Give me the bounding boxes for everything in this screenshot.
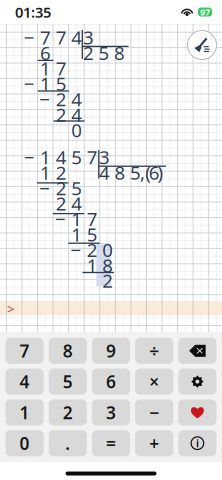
staticText: 97 <box>200 6 210 18</box>
button[interactable]: . <box>49 430 87 456</box>
staticText: 5 <box>63 370 73 393</box>
button[interactable]: Clear <box>187 30 216 59</box>
staticText: 1 <box>71 222 82 247</box>
staticText: 1 <box>40 160 51 185</box>
button[interactable]: − <box>135 399 173 425</box>
staticText: × <box>149 370 159 393</box>
staticText: 4 <box>20 370 30 393</box>
staticText: 6 <box>149 160 160 185</box>
button[interactable]: Favourites <box>178 399 216 425</box>
button[interactable]: + <box>135 430 173 456</box>
staticText: . <box>65 432 70 455</box>
staticText: 2 <box>56 160 67 185</box>
button[interactable]: 1 <box>5 399 44 425</box>
staticText: 2 <box>83 40 94 65</box>
staticText: 3 <box>83 25 94 50</box>
staticText: 5 <box>71 145 82 169</box>
staticText: 7 <box>56 56 67 81</box>
staticText: , <box>140 160 145 185</box>
button[interactable]: 3 <box>92 399 130 425</box>
button[interactable]: × <box>135 368 173 395</box>
staticText: 4 <box>71 87 82 111</box>
staticText: 2 <box>102 268 113 293</box>
staticText: 01:35 <box>15 2 51 22</box>
button[interactable]: 9 <box>92 338 130 364</box>
staticText: 1 <box>40 56 51 81</box>
button[interactable]: 5 <box>49 368 87 395</box>
staticText: 1 <box>40 145 51 169</box>
button[interactable]: 8 <box>49 338 87 364</box>
staticText: 2 <box>56 175 67 200</box>
staticText: 1 <box>20 401 30 424</box>
staticText: − <box>149 401 159 424</box>
staticText: 1 <box>87 253 98 278</box>
button[interactable]: Settings <box>178 368 216 395</box>
staticText: 1 <box>40 71 51 96</box>
staticText: 8 <box>102 253 113 278</box>
staticText: 4 <box>71 102 82 127</box>
staticText: 2 <box>87 237 98 262</box>
staticText: 7 <box>20 339 30 362</box>
staticText: 2 <box>56 102 67 127</box>
staticText: 4 <box>99 160 110 185</box>
staticText: 2 <box>56 87 67 111</box>
staticText: 2 <box>56 191 67 216</box>
staticText: 5 <box>87 222 98 247</box>
staticText: ÷ <box>149 339 159 362</box>
staticText: − <box>24 145 35 169</box>
staticText: 7 <box>87 206 98 231</box>
button[interactable]: = <box>92 430 130 456</box>
staticText: − <box>55 206 66 231</box>
staticText: ) <box>157 160 163 185</box>
staticText: + <box>149 432 159 455</box>
button[interactable]: ÷ <box>135 338 173 364</box>
staticText: − <box>24 25 35 50</box>
staticText: ( <box>145 160 151 185</box>
staticText: − <box>39 87 50 111</box>
button[interactable]: 2 <box>49 399 87 425</box>
staticText: 5 <box>56 71 67 96</box>
staticText: 9 <box>106 339 116 362</box>
staticText: − <box>70 237 81 262</box>
button[interactable]: 7 <box>5 338 44 364</box>
button[interactable]: 0 <box>5 430 44 456</box>
staticText: 1 <box>71 206 82 231</box>
staticText: 7 <box>40 25 51 50</box>
button[interactable]: Delete <box>178 338 216 364</box>
staticText: = <box>106 432 116 455</box>
staticText: 3 <box>106 401 116 424</box>
staticText: 5 <box>98 40 109 65</box>
staticText: − <box>39 175 50 200</box>
staticText: 2 <box>63 401 73 424</box>
staticText: 6 <box>40 40 51 65</box>
staticText: 8 <box>63 339 73 362</box>
staticText: 5 <box>130 160 141 185</box>
staticText: 0 <box>102 237 113 262</box>
staticText: 8 <box>114 160 125 185</box>
staticText: 6 <box>106 370 116 393</box>
staticText: 0 <box>20 432 30 455</box>
staticText: 4 <box>71 25 82 50</box>
staticText: 3 <box>99 145 110 169</box>
staticText: 5 <box>71 175 82 200</box>
button[interactable]: Info <box>178 430 216 456</box>
button[interactable]: 4 <box>5 368 44 395</box>
staticText: 7 <box>56 25 67 50</box>
staticText: > <box>7 300 15 317</box>
button[interactable]: 6 <box>92 368 130 395</box>
staticText: 7 <box>87 145 98 169</box>
staticText: 4 <box>71 191 82 216</box>
staticText: 0 <box>71 117 82 142</box>
staticText: − <box>24 71 35 96</box>
staticText: 8 <box>114 40 125 65</box>
staticText: 4 <box>56 145 67 169</box>
staticText: i <box>196 436 199 450</box>
